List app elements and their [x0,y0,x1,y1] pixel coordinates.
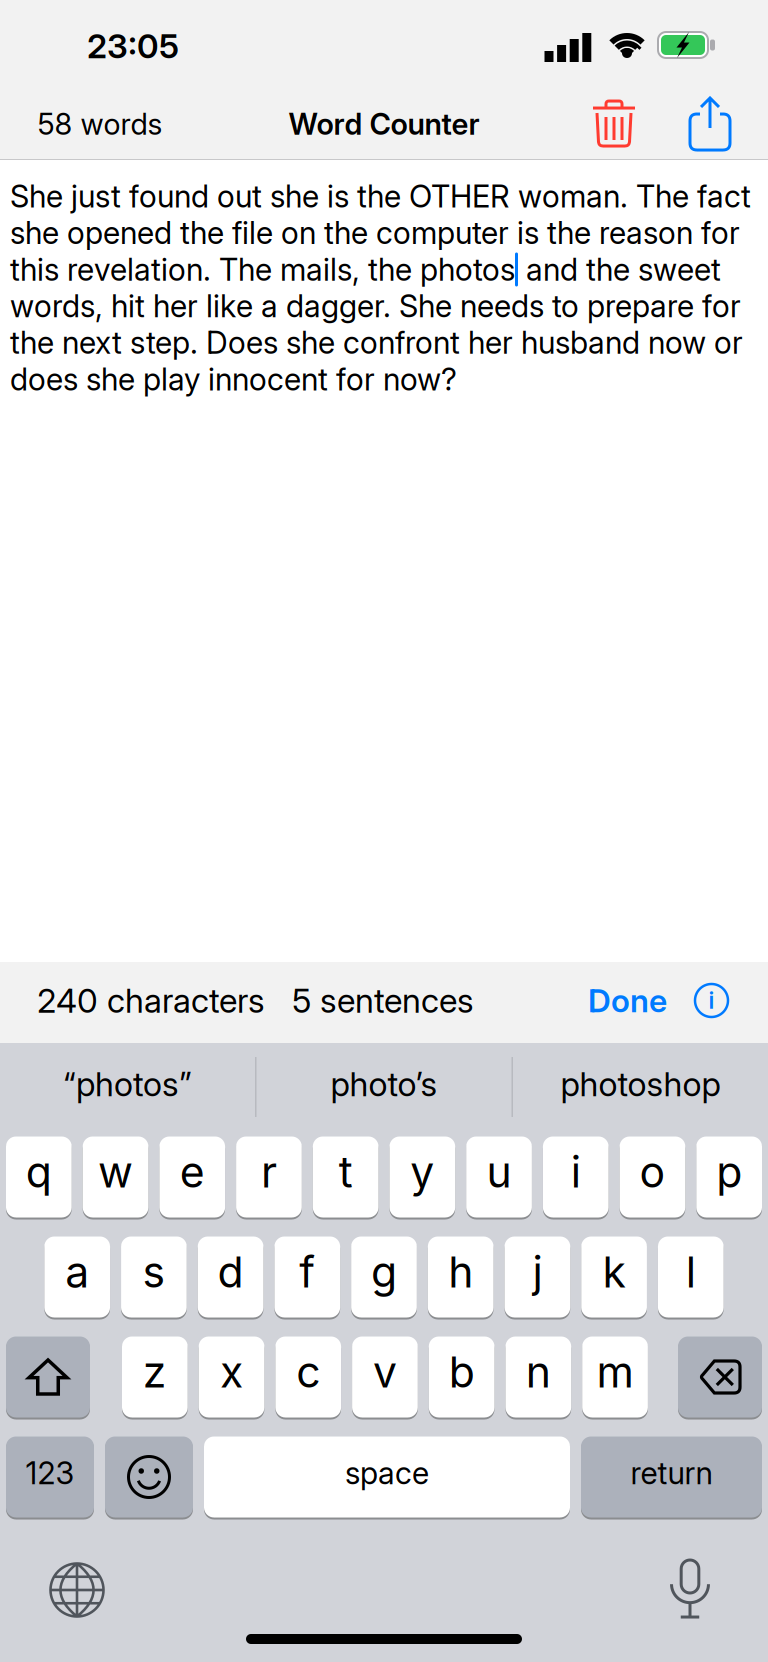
staticText: l [686,1247,696,1297]
staticText: p [716,1147,742,1197]
button[interactable]: i [543,1136,609,1217]
button[interactable]: f [274,1236,340,1317]
button[interactable]: Shift [6,1336,90,1417]
button[interactable]: x [199,1336,264,1417]
staticText: this revelation. The mails, the photos [10,251,515,288]
button[interactable]: space [204,1436,570,1517]
button[interactable]: w [83,1136,148,1217]
button[interactable]: d [198,1236,263,1317]
staticText: m [597,1347,634,1397]
button[interactable]: j [504,1236,570,1317]
button[interactable]: Next keyboard [49,1562,105,1618]
staticText: t [339,1147,353,1197]
staticText: g [371,1247,397,1297]
button[interactable]: Info [695,984,728,1017]
staticText: v [373,1347,397,1397]
staticText: 23:05 [87,26,179,66]
button[interactable]: photo’s [256,1043,511,1131]
staticText: return [630,1455,712,1491]
staticText: and the sweet [518,251,721,288]
staticText: She just found out she is the OTHER woma… [10,178,751,214]
button[interactable]: photoshop [513,1043,768,1131]
button[interactable]: “photos” [0,1043,255,1131]
button[interactable]: y [389,1136,455,1217]
staticText: 58 words [37,107,162,141]
staticText: n [526,1347,551,1397]
button[interactable]: a [44,1236,110,1317]
button[interactable]: m [582,1336,648,1417]
button[interactable]: v [352,1336,418,1417]
button[interactable]: Dictate [669,1560,711,1620]
staticText: z [143,1347,167,1397]
button[interactable]: e [159,1136,225,1217]
staticText: the next step. Does she confront her hus… [10,325,743,361]
button[interactable]: Emoji [105,1436,193,1517]
staticText: Done [588,982,667,1019]
staticText: w [98,1147,133,1197]
staticText: 240 characters [37,981,265,1020]
staticText: h [448,1247,473,1297]
button[interactable]: r [236,1136,302,1217]
staticText: r [261,1147,277,1197]
staticText: j [532,1247,542,1297]
staticText: space [345,1455,429,1491]
button[interactable]: g [351,1236,417,1317]
staticText: k [603,1247,626,1297]
button[interactable]: u [466,1136,532,1217]
button[interactable]: Delete [591,98,637,148]
button[interactable]: return [581,1436,762,1517]
staticText: words, hit her like a dagger. She needs … [10,288,741,324]
button[interactable]: p [696,1136,762,1217]
button[interactable]: s [121,1236,187,1317]
staticText: e [180,1147,205,1197]
staticText: photoshop [560,1064,720,1104]
button[interactable]: q [6,1136,72,1217]
button[interactable]: l [658,1236,724,1317]
button[interactable]: z [122,1336,188,1417]
button[interactable]: h [428,1236,493,1317]
staticText: c [296,1347,320,1397]
button[interactable]: n [505,1336,571,1417]
button[interactable]: Delete [678,1336,762,1417]
button[interactable]: b [429,1336,494,1417]
staticText: “photos” [63,1064,192,1104]
staticText: 5 sentences [292,981,474,1020]
staticText: i [571,1147,581,1197]
staticText: photo’s [330,1064,437,1104]
staticText: s [142,1247,165,1297]
button[interactable]: Share [690,98,730,150]
staticText: y [410,1147,434,1197]
button[interactable]: Done [588,982,667,1019]
staticText: b [449,1347,475,1397]
staticText: 123 [25,1455,74,1491]
staticText: o [639,1147,665,1197]
staticText: d [218,1247,244,1297]
staticText: u [486,1147,511,1197]
staticText: Word Counter [288,107,479,141]
staticText: does she play innocent for now? [10,361,457,397]
staticText: x [220,1347,243,1397]
button[interactable]: k [581,1236,647,1317]
staticText: f [299,1247,315,1297]
staticText: q [26,1147,52,1197]
button[interactable]: t [313,1136,378,1217]
button[interactable]: o [620,1136,685,1217]
staticText: she opened the file on the computer is t… [10,215,740,251]
staticText: i [708,987,714,1014]
button[interactable]: c [275,1336,341,1417]
button[interactable]: 123 [6,1436,94,1517]
staticText: a [65,1247,89,1297]
